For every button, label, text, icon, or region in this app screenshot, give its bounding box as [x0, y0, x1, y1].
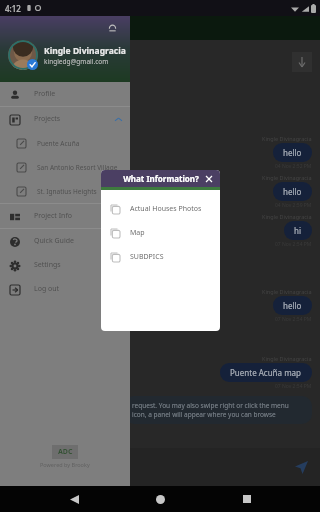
staticText: SUBDPICS [130, 252, 164, 262]
staticText: Profile [34, 89, 56, 99]
button[interactable]: Projects [0, 107, 130, 131]
staticText: Projects [34, 114, 61, 124]
button[interactable]: San Antonio Resort Village [0, 155, 130, 179]
staticText: Map [130, 228, 145, 238]
staticText: 04 Nov 2:52 PM [275, 163, 312, 170]
staticText: hello [283, 147, 302, 158]
staticText: Kingle Divinagracia [262, 288, 312, 295]
button[interactable]: Project Info [0, 204, 130, 228]
button[interactable]: Actual Houses Photos [101, 197, 220, 221]
button[interactable]: Close [203, 173, 215, 185]
staticText: Kingle Divinagracia [262, 174, 312, 181]
staticText: Kingle Divinagracia [262, 355, 312, 362]
staticText: Project Info [34, 211, 73, 221]
button[interactable]: Back [61, 486, 87, 512]
staticText: request. You may also swipe right or cli… [132, 401, 304, 419]
staticText: Actual Houses Photos [130, 204, 202, 214]
staticText: 07 Nov 2:54 PM [275, 383, 312, 390]
staticText: San Antonio Resort Village [37, 163, 118, 172]
button[interactable]: Map [101, 221, 220, 245]
staticText: 07 Nov 2:54 PM [275, 316, 312, 323]
staticText: hello [283, 186, 302, 197]
staticText: St. Ignatius Heights [37, 187, 97, 196]
button[interactable]: Recents [234, 486, 260, 512]
button[interactable]: Scroll to bottom [292, 52, 312, 72]
staticText: Kingle Divinagracia [262, 213, 312, 220]
staticText: What Information? [123, 173, 199, 184]
staticText: hi [294, 225, 302, 236]
staticText: Puente Acuña [37, 139, 80, 148]
button[interactable]: Profile [0, 82, 130, 106]
button[interactable]: Home [147, 486, 173, 512]
button[interactable]: hello [273, 296, 312, 315]
staticText: Kingle Divinagracia [262, 135, 312, 142]
staticText: ADC [58, 447, 73, 457]
staticText: hello [283, 300, 302, 311]
staticText: Kingle Divinagracia [44, 45, 126, 57]
button[interactable]: Puente Acuña map [220, 363, 312, 382]
staticText: kingledg@gmail.com [44, 57, 109, 66]
button[interactable]: Log out [0, 277, 130, 301]
button[interactable]: SUBDPICS [101, 245, 220, 269]
staticText: 07 Nov 2:54 PM [275, 241, 312, 248]
button[interactable]: St. Ignatius Heights [0, 179, 130, 203]
button[interactable]: hello [273, 182, 312, 201]
button[interactable]: request. You may also swipe right or cli… [124, 396, 312, 424]
staticText: 4:12 [5, 3, 21, 14]
button[interactable]: hi [284, 221, 312, 240]
button[interactable]: Notifications [104, 20, 120, 36]
button[interactable]: Puente Acuña [0, 131, 130, 155]
staticText: Quick Guide [34, 236, 74, 246]
button[interactable]: Quick Guide [0, 229, 130, 253]
button[interactable]: Settings [0, 253, 130, 277]
button[interactable]: hello [273, 143, 312, 162]
staticText: Log out [34, 284, 60, 294]
staticText: 04 Nov 2:59 PM [275, 202, 312, 209]
staticText: Puente Acuña map [230, 367, 302, 378]
button[interactable]: Send [290, 456, 312, 478]
staticText: Powered by Brooky [40, 461, 90, 468]
staticText: Settings [34, 260, 61, 270]
